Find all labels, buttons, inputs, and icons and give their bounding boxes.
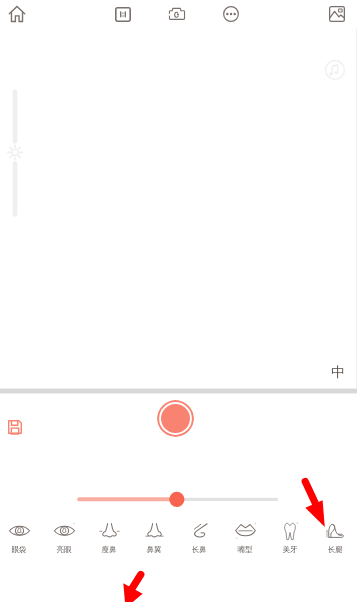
button[interactable]: Music xyxy=(323,58,347,82)
staticText: 瘦鼻 xyxy=(87,545,131,555)
staticText: 美牙 xyxy=(268,545,312,555)
button[interactable]: Aspect ratio 1 to 1 xyxy=(111,2,135,26)
button[interactable]: 长腿 xyxy=(313,518,357,558)
button[interactable]: 亮眼 xyxy=(42,518,86,558)
button[interactable]: 鼻翼 xyxy=(132,518,176,558)
staticText: 鼻翼 xyxy=(132,545,176,555)
button[interactable]: Home xyxy=(5,2,29,26)
button[interactable]: 美牙 xyxy=(268,518,312,558)
button[interactable]: Gallery xyxy=(325,2,349,26)
button[interactable]: 中 xyxy=(329,364,347,382)
staticText: 长鼻 xyxy=(177,545,221,555)
button[interactable]: 眼袋 xyxy=(0,518,41,558)
button[interactable]: 长鼻 xyxy=(177,518,221,558)
button[interactable] xyxy=(8,89,22,217)
staticText: 亮眼 xyxy=(42,545,86,555)
button[interactable] xyxy=(72,489,284,510)
button[interactable]: Shutter xyxy=(157,400,194,437)
staticText: 长腿 xyxy=(313,545,357,555)
staticText: 眼袋 xyxy=(0,545,41,555)
staticText: 中 xyxy=(331,364,345,382)
staticText: 嘴型 xyxy=(223,545,267,555)
button[interactable]: More options xyxy=(219,2,243,26)
button[interactable]: 瘦鼻 xyxy=(87,518,131,558)
button[interactable]: Save xyxy=(3,415,27,439)
button[interactable]: 嘴型 xyxy=(223,518,267,558)
button[interactable]: Switch camera xyxy=(165,2,189,26)
